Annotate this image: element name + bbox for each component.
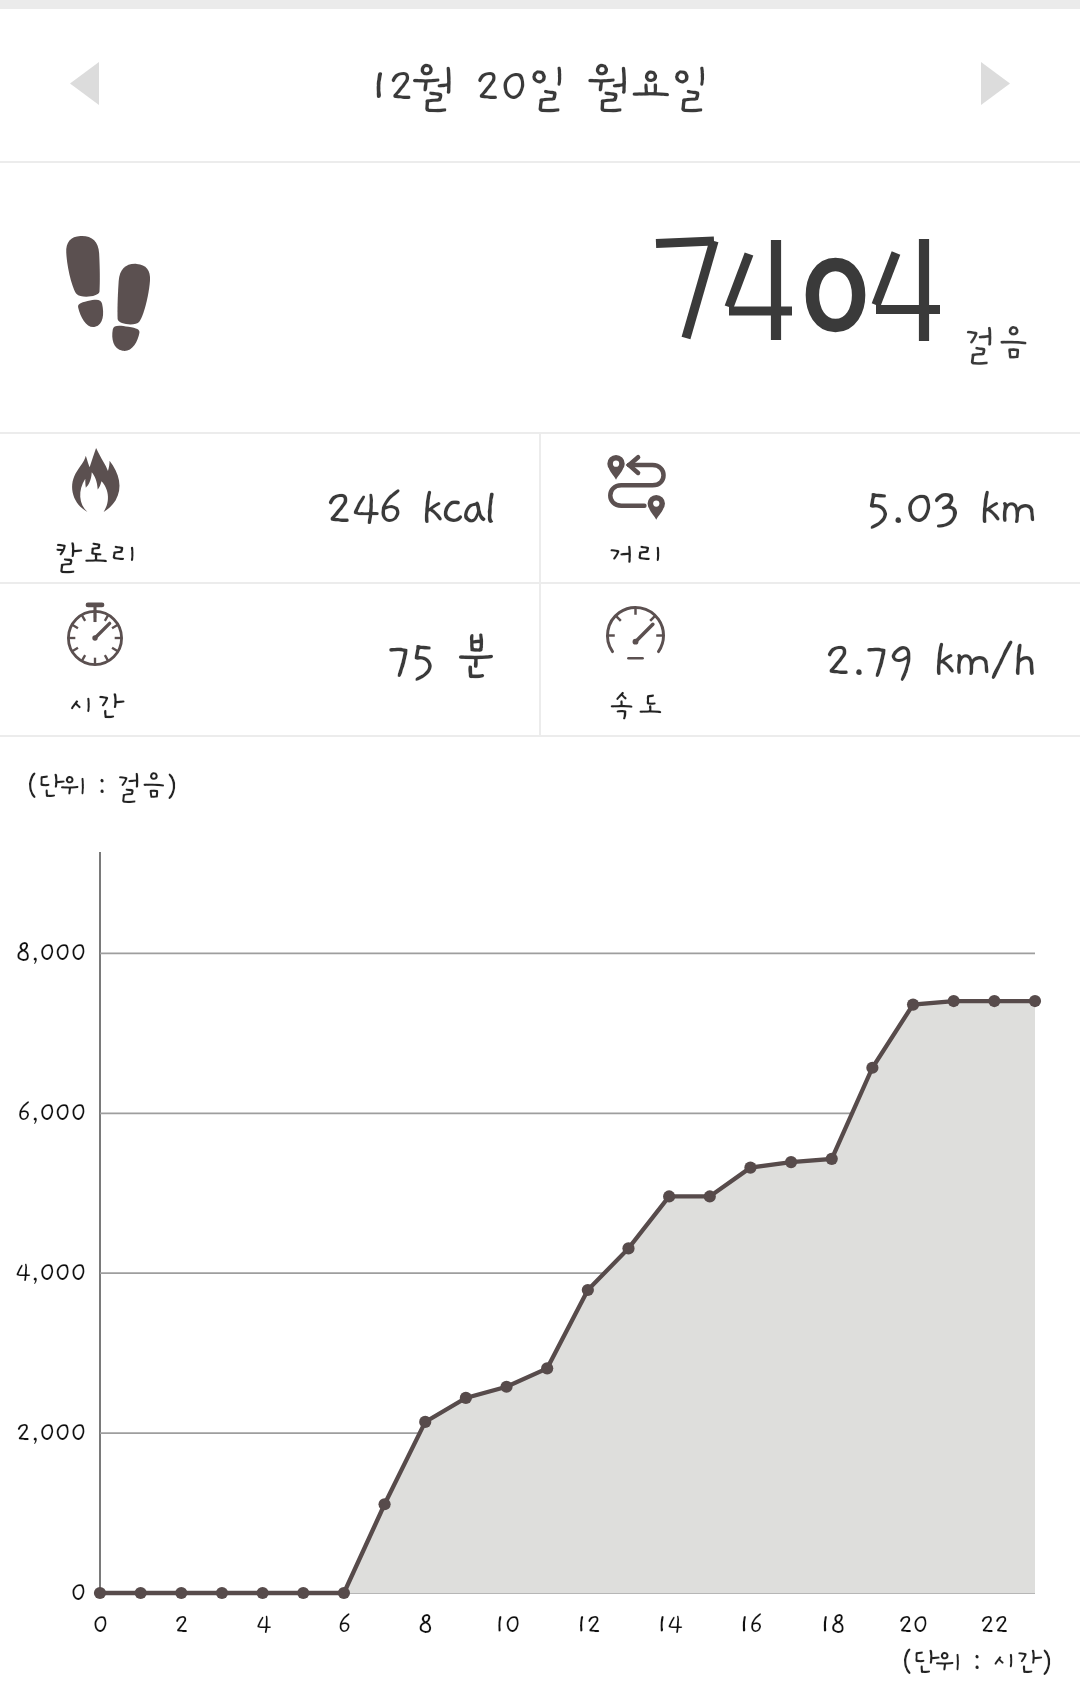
staticText: (단위 : 걸음): [25, 770, 177, 803]
staticText: 0: [60, 1610, 140, 1640]
staticText: 20: [873, 1610, 953, 1640]
staticText: 걸음: [963, 323, 1030, 365]
staticText: 0: [0, 1578, 86, 1608]
staticText: 22: [954, 1610, 1034, 1640]
staticText: 칼로리: [0, 538, 192, 573]
button[interactable]: Next day: [920, 9, 1080, 161]
button[interactable]: 시간: [0, 584, 540, 735]
staticText: 246 kcal: [325, 481, 496, 536]
button[interactable]: 거리: [540, 433, 1080, 582]
staticText: 시간: [0, 689, 192, 724]
button[interactable]: 속도: [540, 584, 1080, 735]
button[interactable]: 걸음: [0, 163, 1080, 432]
staticText: 2,000: [0, 1418, 86, 1448]
staticText: 5.03 km: [865, 481, 1036, 536]
button[interactable]: 칼로리: [0, 433, 540, 582]
staticText: 8: [385, 1610, 465, 1640]
staticText: 8,000: [0, 938, 86, 968]
button[interactable]: Previous day: [0, 9, 160, 161]
staticText: 4: [223, 1610, 303, 1640]
staticText: (단위 : 시간): [900, 1646, 1052, 1679]
staticText: 16: [710, 1610, 790, 1640]
staticText: 2: [141, 1610, 221, 1640]
staticText: 75 분: [387, 633, 496, 688]
staticText: 14: [629, 1610, 709, 1640]
staticText: 6,000: [0, 1098, 86, 1128]
staticText: 12: [548, 1610, 628, 1640]
staticText: 4,000: [0, 1258, 86, 1288]
staticText: 거리: [540, 538, 732, 573]
staticText: 12월 20일 월요일: [0, 60, 1080, 112]
staticText: 6: [304, 1610, 384, 1640]
staticText: 10: [467, 1610, 547, 1640]
staticText: 18: [792, 1610, 872, 1640]
staticText: 2.79 km/h: [824, 633, 1036, 688]
staticText: 속도: [540, 689, 732, 724]
